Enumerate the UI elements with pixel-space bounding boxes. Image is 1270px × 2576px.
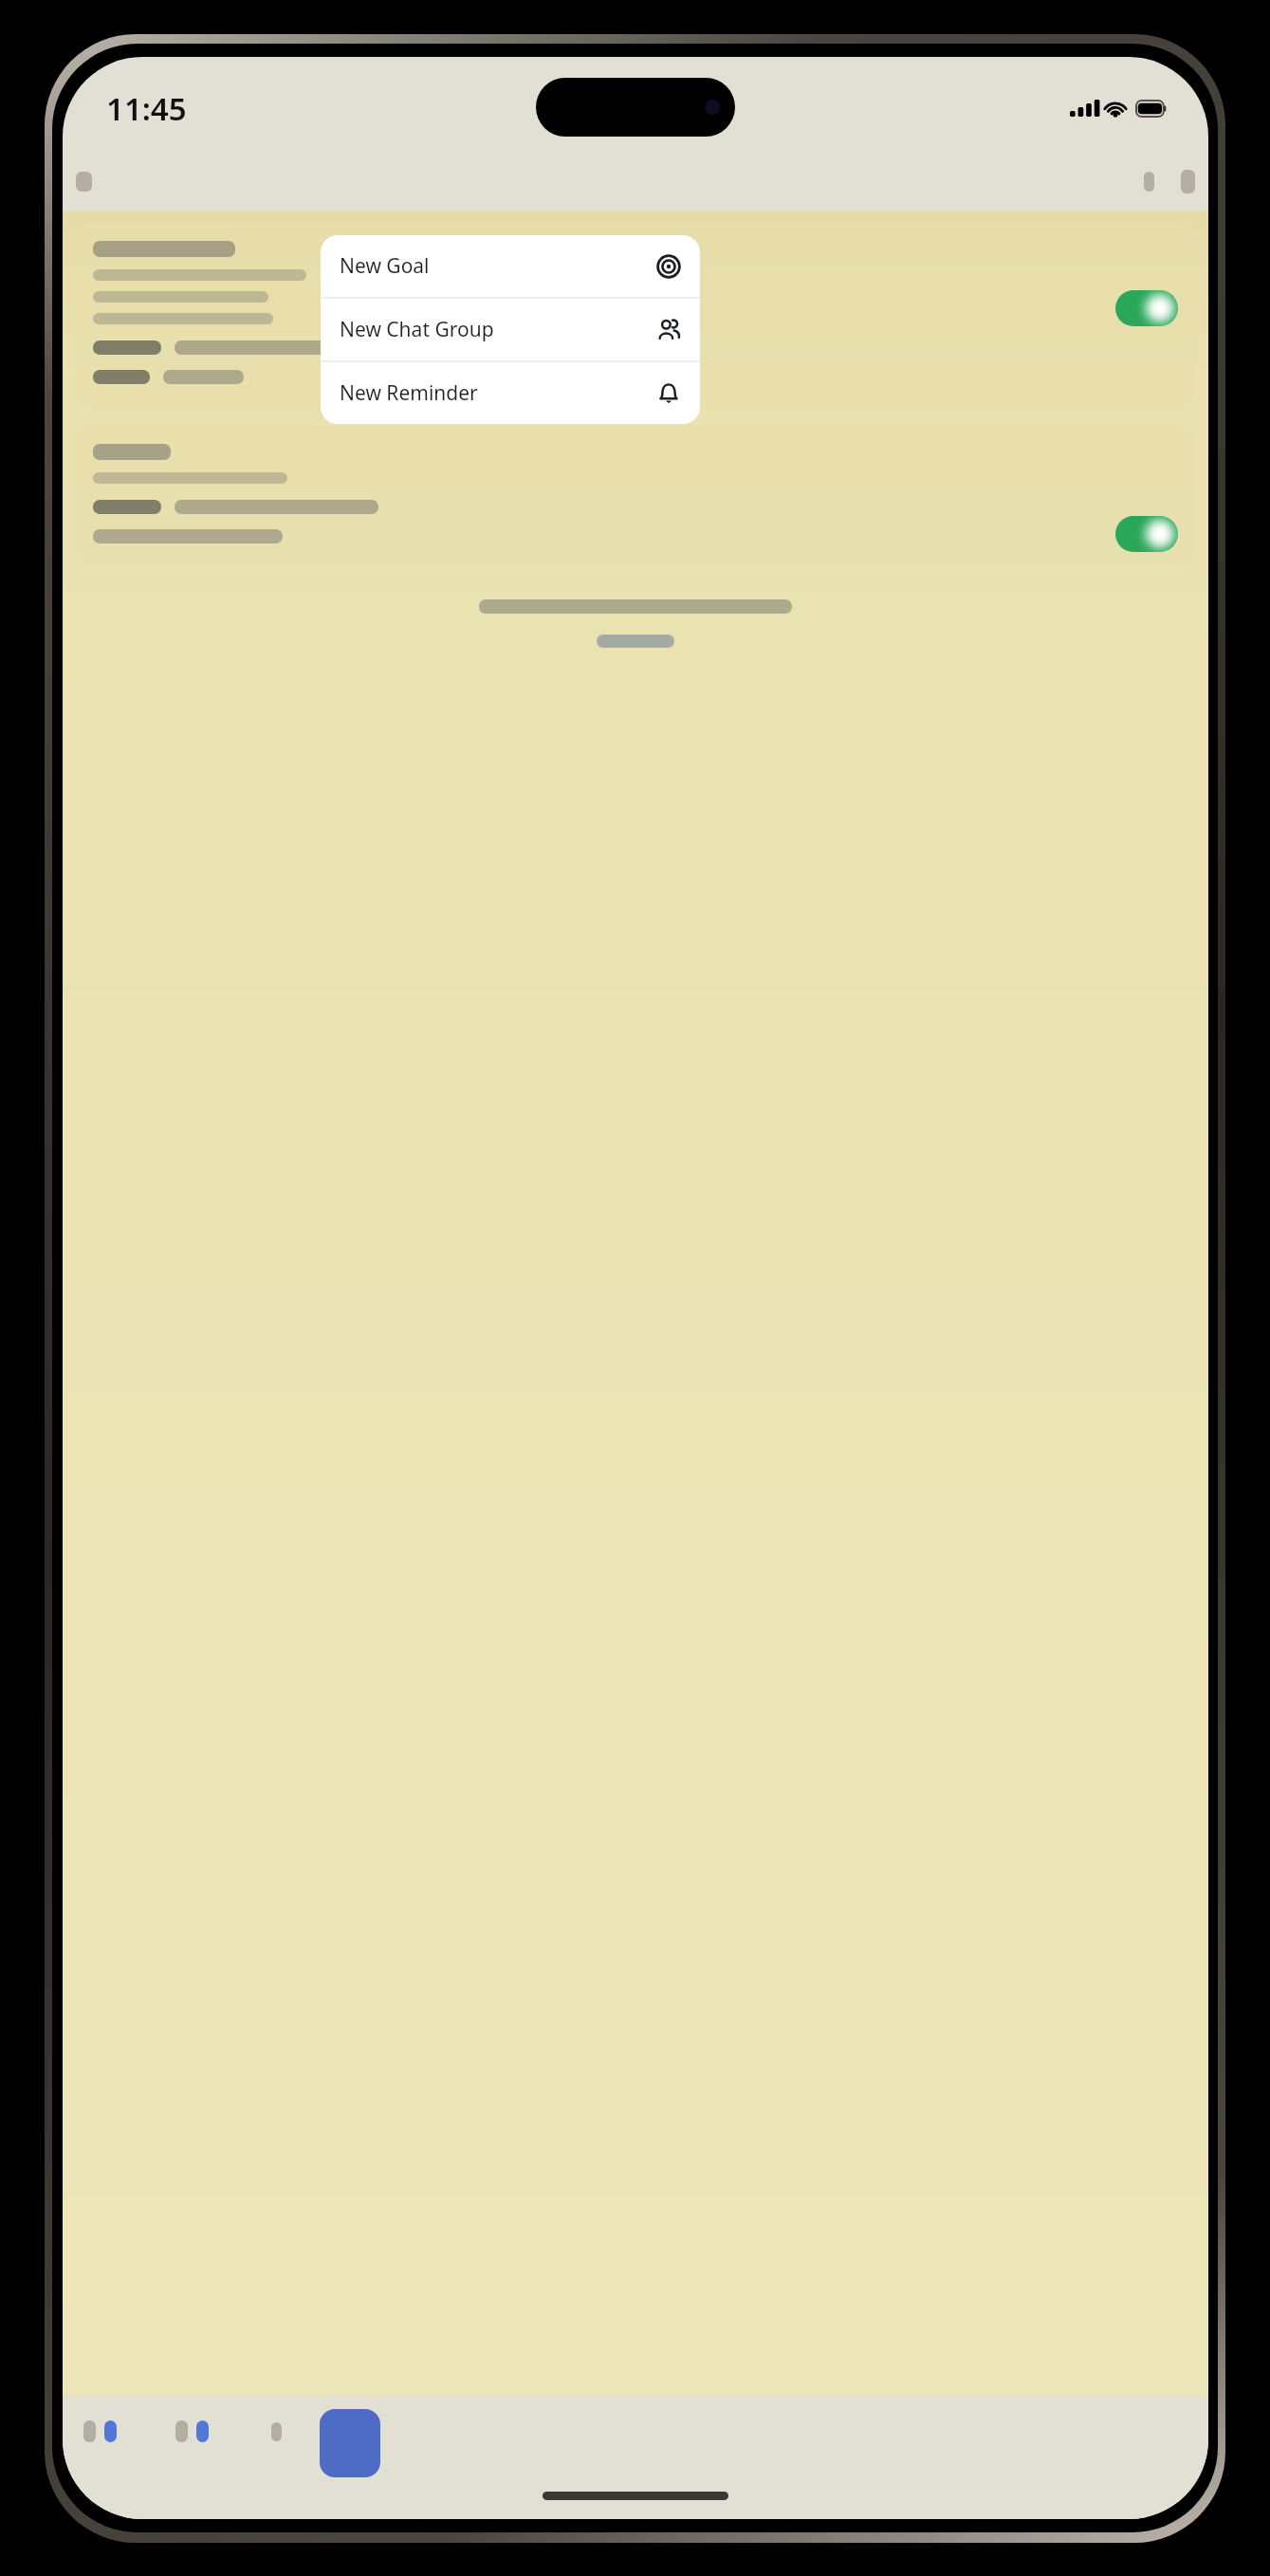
staticText: New Chat Group bbox=[340, 316, 494, 343]
button[interactable]: New Chat Group bbox=[321, 299, 700, 360]
button[interactable] bbox=[76, 222, 1195, 408]
button[interactable] bbox=[76, 425, 1195, 565]
button[interactable]: Add bbox=[320, 2409, 380, 2477]
button[interactable]: New Goal bbox=[321, 235, 700, 297]
staticText: New Goal bbox=[340, 252, 430, 280]
staticText: 11:45 bbox=[106, 87, 187, 130]
button[interactable]: New Reminder bbox=[321, 362, 700, 424]
staticText: New Reminder bbox=[340, 379, 478, 407]
